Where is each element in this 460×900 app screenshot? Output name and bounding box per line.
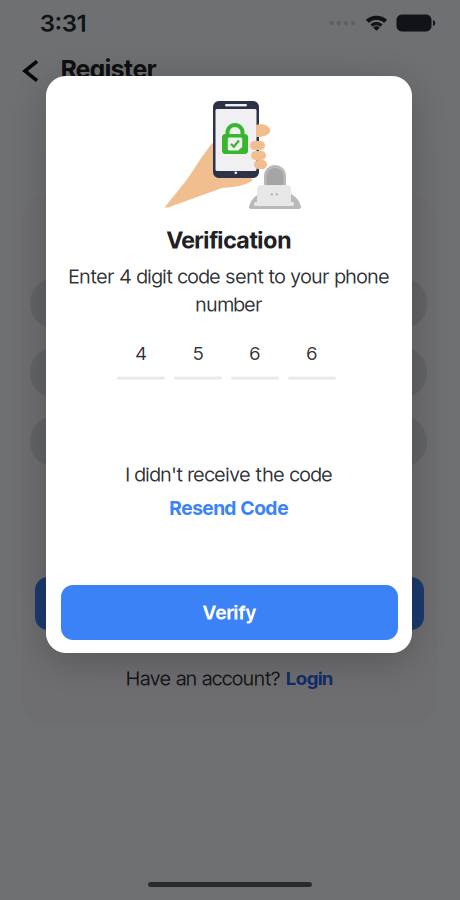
staticText: 6	[249, 342, 260, 365]
staticText: Resend Code	[169, 496, 288, 520]
staticText: I didn't receive the code	[125, 462, 332, 486]
button[interactable]: Back	[14, 54, 48, 88]
staticText: Have an account?	[126, 666, 280, 690]
staticText: 5	[193, 342, 203, 365]
button[interactable]: Resend Code	[46, 495, 412, 521]
button[interactable]: Verify	[61, 585, 398, 640]
staticText: 6	[306, 342, 317, 365]
staticText: Enter 4 digit code sent to your phone	[68, 264, 389, 288]
staticText: Verification	[166, 226, 291, 254]
staticText: Login	[286, 667, 333, 689]
staticText: 4	[135, 342, 146, 365]
staticText: 3:31	[40, 8, 86, 37]
staticText: number	[195, 292, 262, 316]
staticText: Register	[61, 54, 156, 84]
staticText: Verify	[202, 601, 256, 624]
